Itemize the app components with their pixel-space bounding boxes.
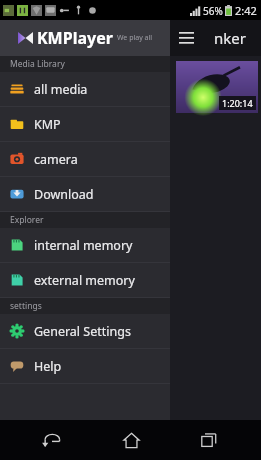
staticText: settings [10,300,42,312]
button[interactable]: Download [0,177,170,211]
button[interactable]: camera [0,142,170,176]
button[interactable]: Back [26,420,78,460]
button[interactable]: Help [0,349,170,383]
staticText: KMP [34,116,61,133]
staticText: 2:42 [235,3,257,18]
staticText: We play all [117,33,153,43]
staticText: 1:20:14 [222,97,253,109]
staticText: Download [34,186,94,203]
button[interactable]: all media [0,72,170,106]
button[interactable]: 1:20:14 [0,56,261,118]
staticText: General Settings [34,323,131,340]
staticText: Help [34,358,62,375]
staticText: internal memory [34,237,133,254]
staticText: KMPlayer [37,27,113,49]
button[interactable]: Home [105,420,157,460]
button[interactable]: external memory [0,263,170,297]
staticText: Media Library [10,58,65,70]
button[interactable]: KMP [0,107,170,141]
button[interactable]: General Settings [0,314,170,348]
button[interactable]: internal memory [0,228,170,262]
staticText: camera [34,151,78,168]
staticText: external memory [34,272,135,289]
staticText: 56% [203,4,223,18]
staticText: Explorer [10,214,44,226]
button[interactable]: Open navigation drawer [172,24,200,52]
staticText: nker Be [214,28,261,48]
staticText: all media [34,81,88,98]
button[interactable]: Recent apps [183,420,235,460]
